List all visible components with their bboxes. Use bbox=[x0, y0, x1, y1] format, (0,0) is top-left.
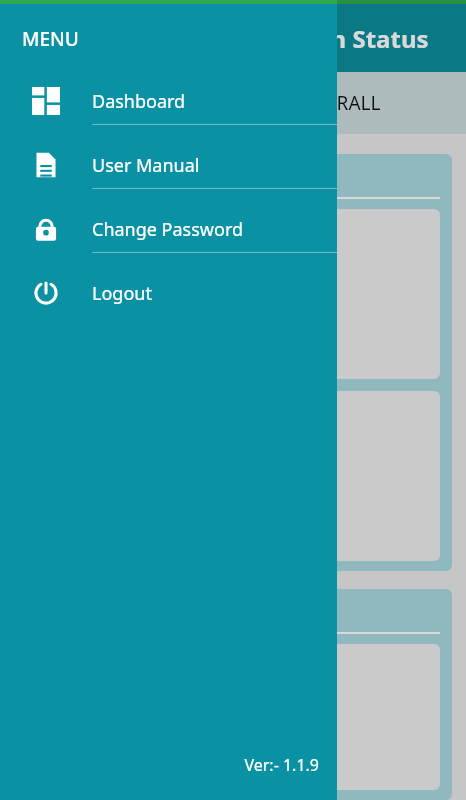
staticText: MENU bbox=[22, 26, 79, 52]
button[interactable]: Change Password bbox=[0, 206, 337, 252]
staticText: OVERALL bbox=[300, 90, 381, 116]
staticText: Dashboard bbox=[92, 89, 186, 114]
staticText: Application Status bbox=[210, 22, 429, 55]
staticText: Ver:- 1.1.9 bbox=[0, 754, 319, 776]
button[interactable]: Pending after 7 days bbox=[26, 209, 440, 379]
staticText: Applications bbox=[26, 164, 138, 189]
button[interactable]: Dashboard bbox=[0, 78, 337, 124]
staticText: Logout bbox=[92, 281, 152, 306]
button[interactable]: Process Pending bbox=[26, 391, 440, 561]
button[interactable]: Logout bbox=[0, 270, 337, 316]
button[interactable]: Pending after 7 days bbox=[26, 644, 440, 790]
staticText: Change Password bbox=[92, 217, 244, 242]
staticText: User Manual bbox=[92, 153, 200, 178]
button[interactable]: User Manual bbox=[0, 142, 337, 188]
